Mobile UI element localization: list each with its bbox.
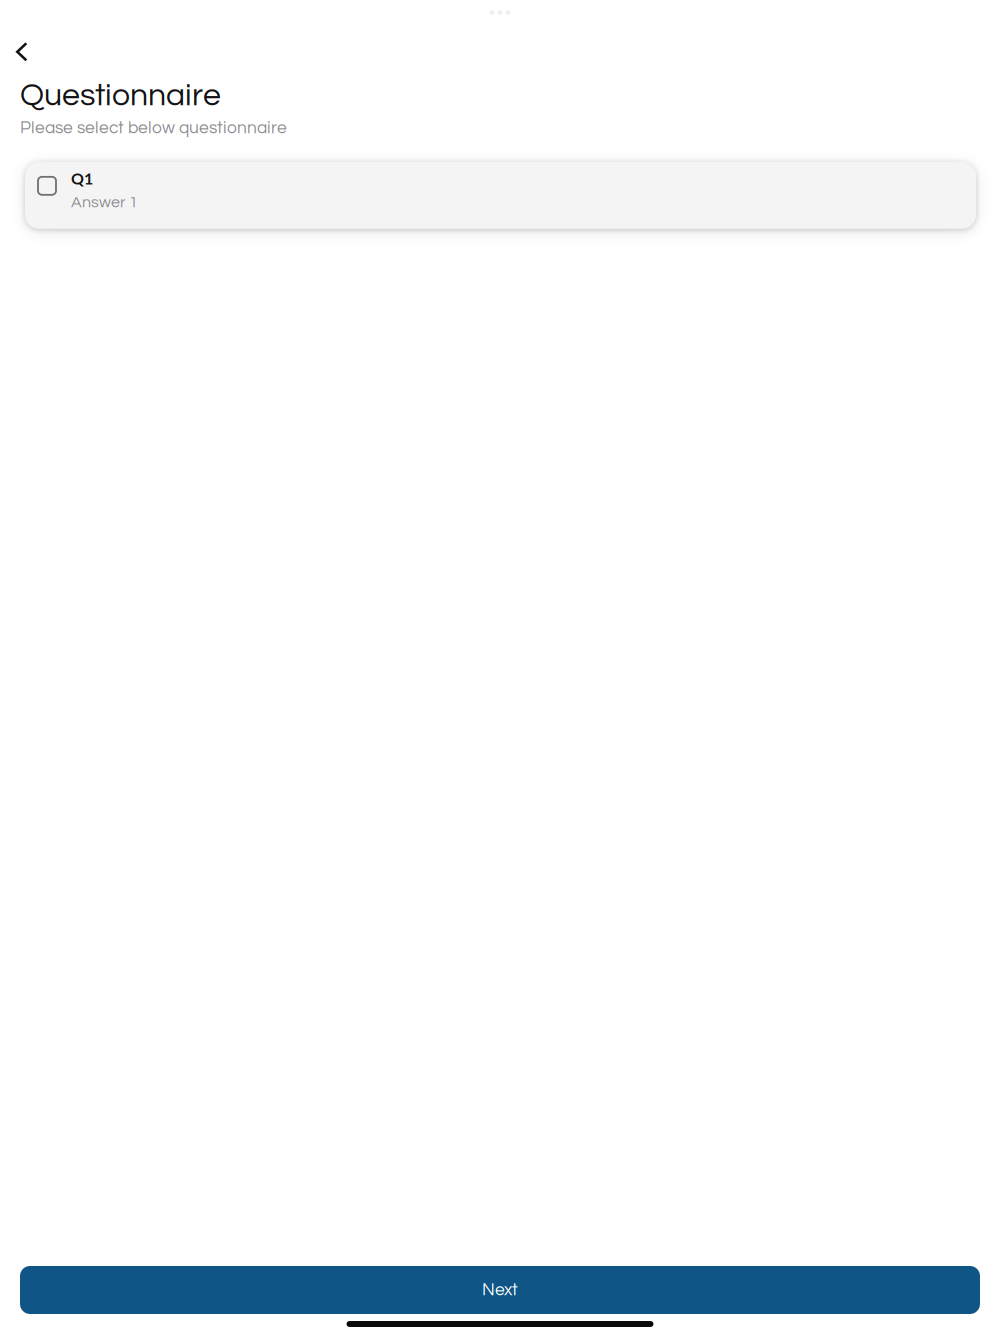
staticText: Next [482,1281,518,1299]
staticText: Answer 1 [71,194,138,210]
button[interactable]: Back [0,35,60,69]
button[interactable]: Next [20,1266,980,1314]
button[interactable]: Q1 [25,162,976,229]
staticText: Questionnaire [20,79,221,112]
staticText: Q1 [71,169,93,188]
staticText: Please select below questionnaire [20,119,287,137]
